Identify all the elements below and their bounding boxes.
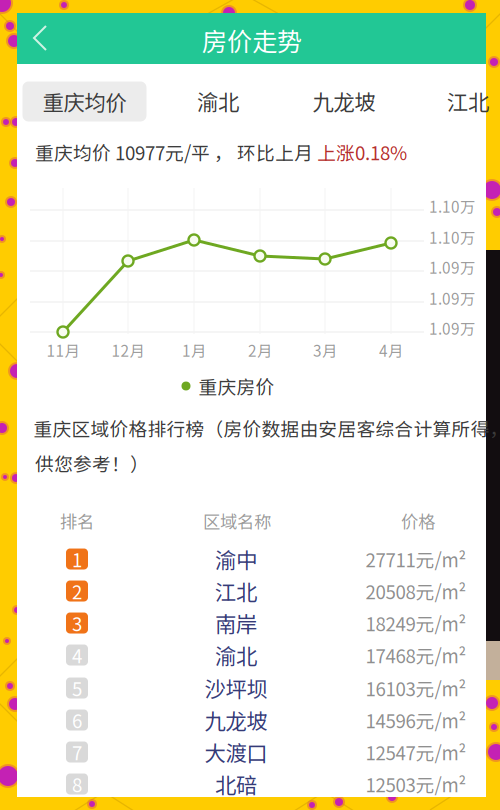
staticText: 1.09万 bbox=[429, 287, 475, 309]
staticText: 沙坪坝 bbox=[204, 673, 267, 703]
staticText: 北碚 bbox=[215, 769, 257, 799]
staticText: 重庆均价 10977元/平 ， 环比上月 bbox=[35, 138, 317, 165]
staticText: 1.10万 bbox=[429, 195, 475, 217]
button[interactable]: 4 bbox=[0, 0, 500, 810]
staticText: 渝北 bbox=[215, 640, 257, 670]
button[interactable]: 重庆均价 bbox=[0, 0, 500, 810]
button[interactable]: 江北 bbox=[0, 0, 500, 810]
button[interactable]: 1 bbox=[0, 0, 500, 810]
staticText: 排名 bbox=[60, 508, 94, 534]
staticText: 12503元/m² bbox=[365, 770, 466, 797]
staticText: 渝中 bbox=[215, 544, 257, 574]
staticText: 4月 bbox=[379, 339, 403, 361]
button[interactable]: 8 bbox=[0, 0, 500, 810]
staticText: 12547元/m² bbox=[365, 738, 466, 765]
staticText: 1 bbox=[72, 545, 82, 572]
button[interactable]: 2 bbox=[0, 0, 500, 810]
staticText: 重庆房价 bbox=[198, 372, 274, 399]
staticText: 1.09万 bbox=[429, 256, 475, 278]
staticText: 九龙坡 bbox=[204, 705, 267, 735]
staticText: 房价走势 bbox=[202, 22, 302, 58]
button[interactable]: 渝北 bbox=[0, 0, 500, 810]
staticText: 1月 bbox=[182, 339, 206, 361]
button[interactable]: 5 bbox=[0, 0, 500, 810]
button[interactable]: 6 bbox=[0, 0, 500, 810]
staticText: 5 bbox=[72, 674, 82, 701]
staticText: 6 bbox=[72, 706, 82, 733]
staticText: 渝北 bbox=[197, 86, 239, 116]
staticText: 九龙坡 bbox=[312, 86, 375, 116]
staticText: 江北 bbox=[215, 576, 257, 606]
staticText: 4 bbox=[72, 641, 82, 668]
staticText: 南岸 bbox=[215, 608, 257, 638]
staticText: 7 bbox=[72, 738, 82, 765]
staticText: 2 bbox=[72, 577, 82, 604]
button[interactable]: 3 bbox=[0, 0, 500, 810]
staticText: 重庆均价 bbox=[42, 86, 126, 117]
staticText: 大渡口 bbox=[204, 737, 267, 767]
staticText: 18249元/m² bbox=[365, 609, 466, 636]
staticText: 2月 bbox=[248, 339, 272, 361]
staticText: 14596元/m² bbox=[365, 706, 466, 733]
staticText: 上涨0.18% bbox=[317, 138, 407, 165]
staticText: 3 bbox=[72, 609, 82, 636]
staticText: 江北 bbox=[447, 86, 489, 116]
staticText: 重庆区域价格排行榜（房价数据由安居客综合计算所得， bbox=[33, 414, 500, 441]
staticText: 11月 bbox=[46, 339, 79, 361]
staticText: 1.10万 bbox=[429, 226, 475, 248]
staticText: 供您参考！） bbox=[35, 449, 149, 476]
staticText: 价格 bbox=[401, 508, 435, 534]
button[interactable]: Back bbox=[0, 0, 500, 810]
staticText: 16103元/m² bbox=[365, 674, 466, 701]
staticText: 20508元/m² bbox=[365, 577, 466, 604]
staticText: 17468元/m² bbox=[365, 641, 466, 668]
staticText: 27711元/m² bbox=[365, 545, 466, 572]
button[interactable]: 九龙坡 bbox=[0, 0, 500, 810]
button[interactable]: 7 bbox=[0, 0, 500, 810]
staticText: 区域名称 bbox=[203, 508, 271, 534]
staticText: 12月 bbox=[111, 339, 144, 361]
staticText: 1.09万 bbox=[429, 317, 475, 339]
staticText: 3月 bbox=[313, 339, 337, 361]
staticText: 8 bbox=[72, 770, 82, 797]
